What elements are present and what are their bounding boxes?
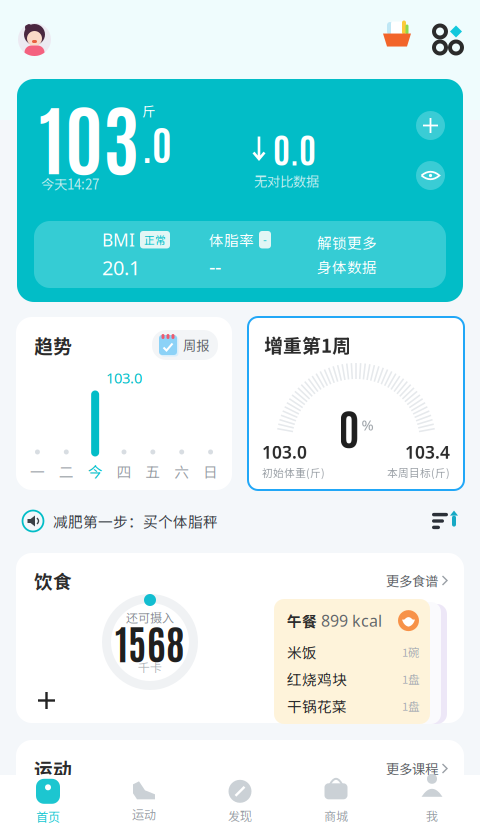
staticText: 运动: [34, 755, 72, 782]
staticText: 1碗: [402, 643, 419, 660]
staticText: 0.0: [273, 126, 316, 170]
staticText: 二: [59, 460, 74, 482]
staticText: 千卡: [138, 658, 162, 675]
button[interactable]: 发现: [192, 775, 288, 829]
staticText: 发现: [228, 807, 252, 824]
button[interactable]: 周报: [152, 330, 218, 360]
button[interactable]: Toggle visibility: [416, 161, 445, 190]
staticText: 米饭: [287, 641, 317, 662]
staticText: 无对比数据: [254, 171, 319, 190]
staticText: 1盘: [402, 697, 419, 714]
staticText: 饮食: [34, 567, 72, 594]
button[interactable]: 更多食谱: [386, 571, 448, 590]
staticText: 五: [145, 460, 160, 482]
staticText: 日: [203, 460, 218, 482]
staticText: 1568: [115, 616, 185, 668]
staticText: 增重第1周: [264, 331, 351, 358]
staticText: 103.0: [106, 368, 142, 387]
button[interactable]: 减肥第一步：买个体脂秤: [0, 500, 480, 542]
staticText: 午餐: [287, 610, 317, 631]
staticText: 干锅花菜: [287, 695, 347, 716]
staticText: 初始体重(斤): [262, 465, 325, 480]
button[interactable]: Add food: [16, 692, 55, 723]
staticText: 更多食谱: [386, 571, 438, 590]
button[interactable]: 商城: [288, 775, 384, 829]
staticText: 899 kcal: [321, 610, 382, 631]
staticText: 商城: [324, 807, 348, 824]
staticText: 20.1: [102, 254, 140, 281]
staticText: --: [209, 253, 221, 280]
staticText: 首页: [36, 808, 60, 825]
button[interactable]: 运动: [96, 775, 192, 829]
staticText: 红烧鸡块: [287, 668, 347, 689]
staticText: 解锁更多: [317, 232, 377, 253]
button[interactable]: Store: [376, 24, 418, 54]
staticText: 体脂率: [209, 229, 254, 250]
staticText: 今: [88, 460, 103, 482]
staticText: BMI: [102, 228, 135, 251]
staticText: 更多课程: [386, 759, 438, 778]
staticText: 周报: [183, 335, 209, 355]
button[interactable]: Add weight: [416, 111, 445, 140]
staticText: 斤: [142, 101, 155, 120]
button[interactable]: More: [418, 25, 480, 53]
staticText: 本周目标(斤): [387, 465, 450, 480]
staticText: 今天14:27: [41, 174, 99, 193]
button[interactable]: Profile: [0, 23, 59, 56]
staticText: 六: [174, 460, 189, 482]
button[interactable]: BMI: [34, 221, 446, 288]
staticText: 运动: [132, 805, 156, 823]
staticText: 1盘: [402, 670, 419, 687]
staticText: 趋势: [34, 331, 72, 358]
button[interactable]: 首页: [0, 775, 96, 829]
staticText: 身体数据: [317, 256, 377, 277]
staticText: 一: [30, 460, 45, 482]
staticText: 0: [338, 399, 359, 454]
staticText: .0: [142, 117, 172, 169]
button[interactable]: 更多课程: [386, 759, 448, 778]
staticText: 103: [39, 85, 139, 185]
staticText: -: [263, 232, 267, 247]
staticText: 正常: [144, 232, 166, 247]
button[interactable]: 我: [384, 775, 480, 829]
staticText: 四: [116, 460, 131, 482]
staticText: 103.0: [262, 440, 307, 463]
staticText: %: [361, 415, 373, 434]
staticText: 103.4: [405, 440, 450, 463]
staticText: 还可摄入: [126, 609, 174, 626]
staticText: 我: [426, 807, 438, 824]
staticText: 减肥第一步：买个体脂秤: [53, 510, 218, 532]
